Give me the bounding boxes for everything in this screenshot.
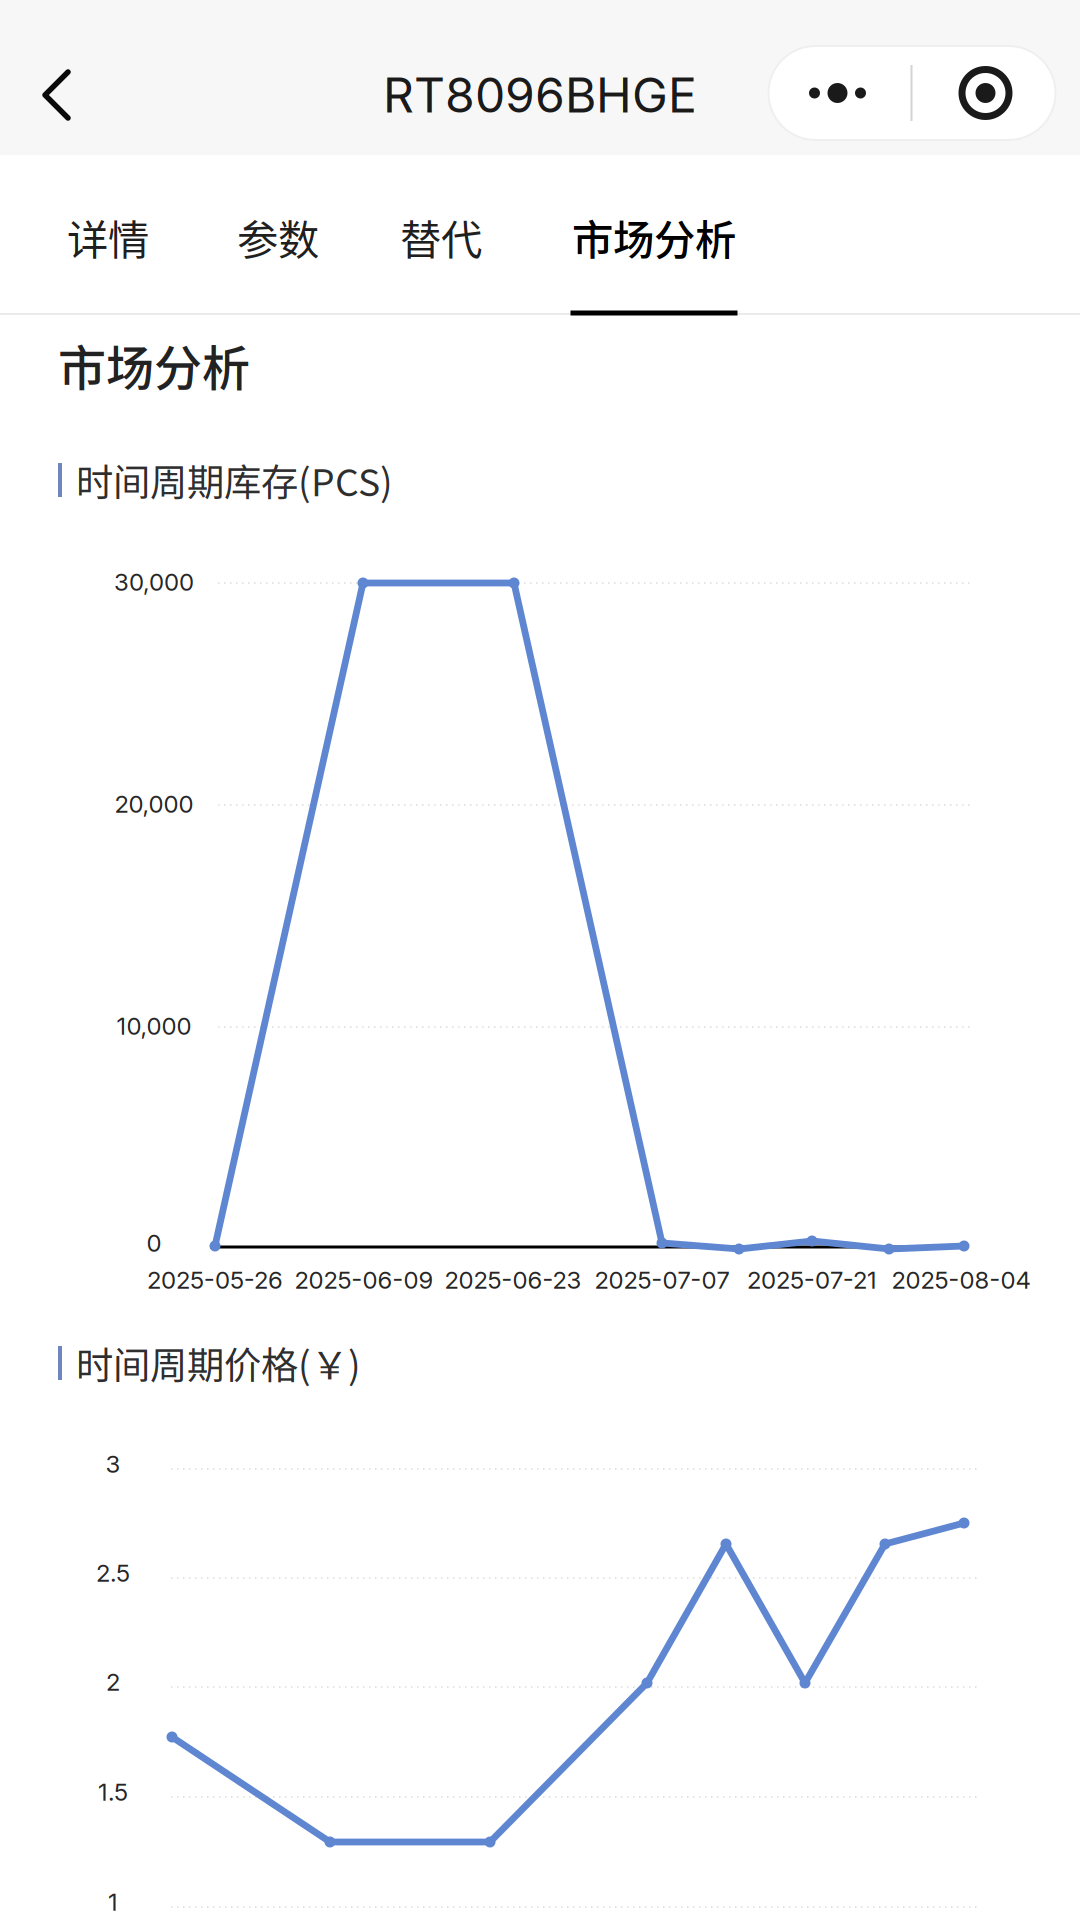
staticText: 3 — [105, 1449, 120, 1478]
staticText: 2025-06-23 — [444, 1265, 581, 1294]
staticText: 10,000 — [116, 1011, 191, 1040]
staticText: 2025-08-04 — [891, 1265, 1030, 1294]
staticText: 1.5 — [98, 1777, 128, 1806]
button[interactable]: Close mini program — [914, 46, 1056, 140]
staticText: 市场分析 — [58, 330, 250, 399]
button[interactable]: 详情 — [53, 153, 163, 319]
staticText: 2.5 — [96, 1558, 130, 1587]
staticText: 2025-06-09 — [294, 1265, 433, 1294]
button[interactable]: 替代 — [386, 153, 496, 319]
staticText: 2025-05-26 — [147, 1265, 283, 1294]
button[interactable]: 市场分析 — [559, 153, 749, 319]
staticText: 0 — [146, 1228, 161, 1257]
staticText: 20,000 — [114, 789, 193, 818]
button[interactable]: Back — [20, 50, 92, 140]
button[interactable]: 参数 — [223, 153, 333, 319]
staticText: 30,000 — [114, 567, 194, 596]
staticText: 详情 — [67, 207, 149, 267]
staticText: 2025-07-07 — [594, 1265, 729, 1294]
button[interactable]: More options — [766, 46, 908, 140]
staticText: 时间周期价格(￥) — [76, 1336, 361, 1390]
staticText: RT8096BHGE — [383, 66, 697, 124]
staticText: 1 — [108, 1887, 118, 1916]
staticText: 2025-07-21 — [747, 1265, 877, 1294]
staticText: 参数 — [237, 207, 319, 267]
staticText: 市场分析 — [572, 207, 736, 267]
staticText: 时间周期库存(PCS) — [76, 453, 393, 507]
staticText: 2 — [106, 1667, 120, 1696]
staticText: 替代 — [400, 207, 482, 267]
